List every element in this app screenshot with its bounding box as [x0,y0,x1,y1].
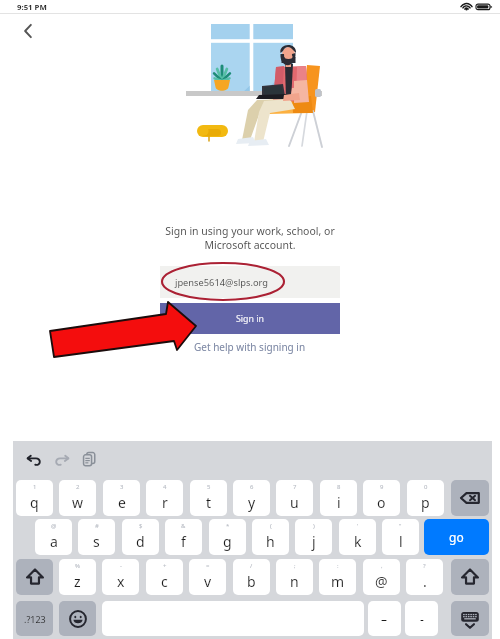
staticText: v [204,572,212,591]
staticText: y [248,493,256,512]
button[interactable]: : [319,559,356,595]
staticText: ' [357,522,359,530]
button[interactable]: Hide keyboard [451,601,489,636]
staticText: 2 [76,483,80,491]
staticText: h [266,532,275,551]
button[interactable]: Shift [451,559,489,595]
button[interactable]: Get help with signing in [0,338,500,356]
staticText: m [331,572,345,591]
staticText: 5 [207,483,211,491]
staticText: z [74,572,81,591]
staticText: 4 [163,483,167,491]
staticText: & [181,522,186,530]
button[interactable]: $ [122,519,159,555]
button[interactable]: / [233,559,270,595]
button[interactable]: Sign in [160,303,340,334]
staticText: 3 [120,483,124,491]
button[interactable]: * [209,519,246,555]
button[interactable]: , [363,559,400,595]
staticText: Sign in using your work, school, or Micr… [0,224,500,252]
staticText: f [181,532,186,551]
button[interactable]: ? [406,559,443,595]
staticText: s [93,532,100,551]
button[interactable]: Hyphen [405,601,438,636]
staticText: 7 [293,483,297,491]
button[interactable]: ; [276,559,313,595]
staticText: ; [294,562,296,570]
staticText: w [72,493,84,512]
button[interactable]: ) [295,519,332,555]
button[interactable]: & [165,519,202,555]
staticText: x [117,572,125,591]
staticText: Get help with signing in [194,340,306,354]
staticText: # [95,522,99,530]
staticText: e [118,493,126,512]
staticText: 9:51 PM [17,2,47,13]
staticText: / [250,562,253,570]
button[interactable]: 3 [103,480,140,516]
button[interactable]: 9 [363,480,400,516]
staticText: % [75,562,80,570]
staticText: 9 [380,483,384,491]
staticText: 1 [33,483,37,491]
button[interactable]: ' [339,519,376,555]
button[interactable]: 8 [320,480,357,516]
staticText: q [30,493,39,512]
button[interactable]: Emoji [59,601,96,636]
staticText: . [423,572,427,591]
staticText: – [381,611,388,627]
staticText: @ [375,572,388,591]
button[interactable]: 2 [59,480,96,516]
staticText: = [206,562,210,570]
button[interactable]: @ [35,519,72,555]
staticText: g [223,532,232,551]
button[interactable]: go [424,519,489,555]
staticText: ( [270,522,272,530]
button[interactable]: Dash [368,601,401,636]
button[interactable]: Back [11,17,45,45]
staticText: ) [313,522,315,530]
staticText: go [449,529,464,545]
button[interactable]: = [189,559,226,595]
button[interactable]: Paste [76,446,102,472]
button[interactable]: Redo [49,446,75,472]
button[interactable]: 5 [190,480,227,516]
button[interactable]: 7 [276,480,313,516]
button[interactable]: Backspace [451,480,489,516]
staticText: * [226,522,230,530]
button[interactable]: 0 [407,480,444,516]
staticText: o [377,493,386,512]
staticText: jpense5614@slps.org [175,276,269,289]
staticText: : [337,562,339,570]
staticText: , [381,562,383,570]
staticText: b [247,572,256,591]
button[interactable]: 1 [16,480,53,516]
staticText: 8 [337,483,341,491]
button[interactable]: ( [252,519,289,555]
staticText: j [312,532,316,551]
button[interactable]: Shift [16,559,53,595]
button[interactable]: Undo [21,446,47,472]
staticText: Sign in [236,313,264,325]
button[interactable]: + [146,559,183,595]
staticText: a [50,532,58,551]
button[interactable]: jpense5614@slps.org [160,266,340,298]
staticText: - [420,611,424,627]
staticText: l [399,532,403,551]
staticText: i [337,493,341,512]
button[interactable]: - [102,559,139,595]
button[interactable]: 4 [146,480,183,516]
staticText: 6 [250,483,254,491]
staticText: r [162,493,168,512]
button[interactable]: 6 [233,480,270,516]
button[interactable]: .?123 [16,601,53,636]
staticText: + [163,562,167,570]
staticText: 0 [424,483,428,491]
staticText: ? [423,562,426,570]
button[interactable]: % [59,559,96,595]
staticText: c [161,572,168,591]
button[interactable]: # [78,519,115,555]
staticText: p [421,493,430,512]
button[interactable]: " [382,519,419,555]
